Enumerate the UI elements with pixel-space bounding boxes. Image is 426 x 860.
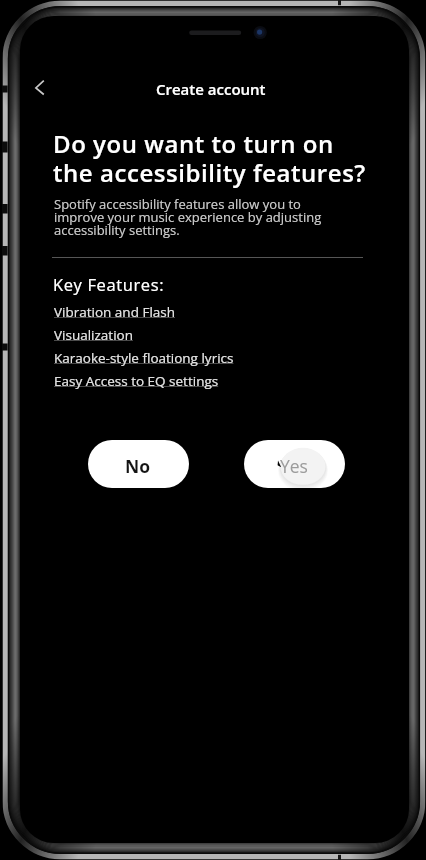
staticText: Vibration and Flash	[54, 303, 175, 321]
button[interactable]: Back	[22, 70, 58, 106]
button[interactable]: Karaoke-style floationg lyrics	[54, 349, 295, 372]
staticText: Do you want to turn on the accessibility…	[53, 127, 366, 189]
button[interactable]: Yes	[244, 440, 345, 488]
button[interactable]: Vibration and Flash	[54, 303, 295, 326]
button[interactable]: Visualization	[54, 326, 295, 349]
staticText: Yes	[280, 454, 308, 478]
button[interactable]: Easy Access to EQ settings	[54, 372, 295, 395]
staticText: Easy Access to EQ settings	[54, 372, 219, 390]
staticText: Key Features:	[53, 273, 165, 295]
staticText: Karaoke-style floationg lyrics	[54, 349, 234, 367]
staticText: No	[125, 454, 151, 478]
staticText: Spotify accessibility features allow you…	[54, 195, 322, 239]
button[interactable]: No	[88, 440, 189, 488]
staticText: Visualization	[54, 326, 133, 344]
staticText: Create account	[156, 79, 266, 99]
